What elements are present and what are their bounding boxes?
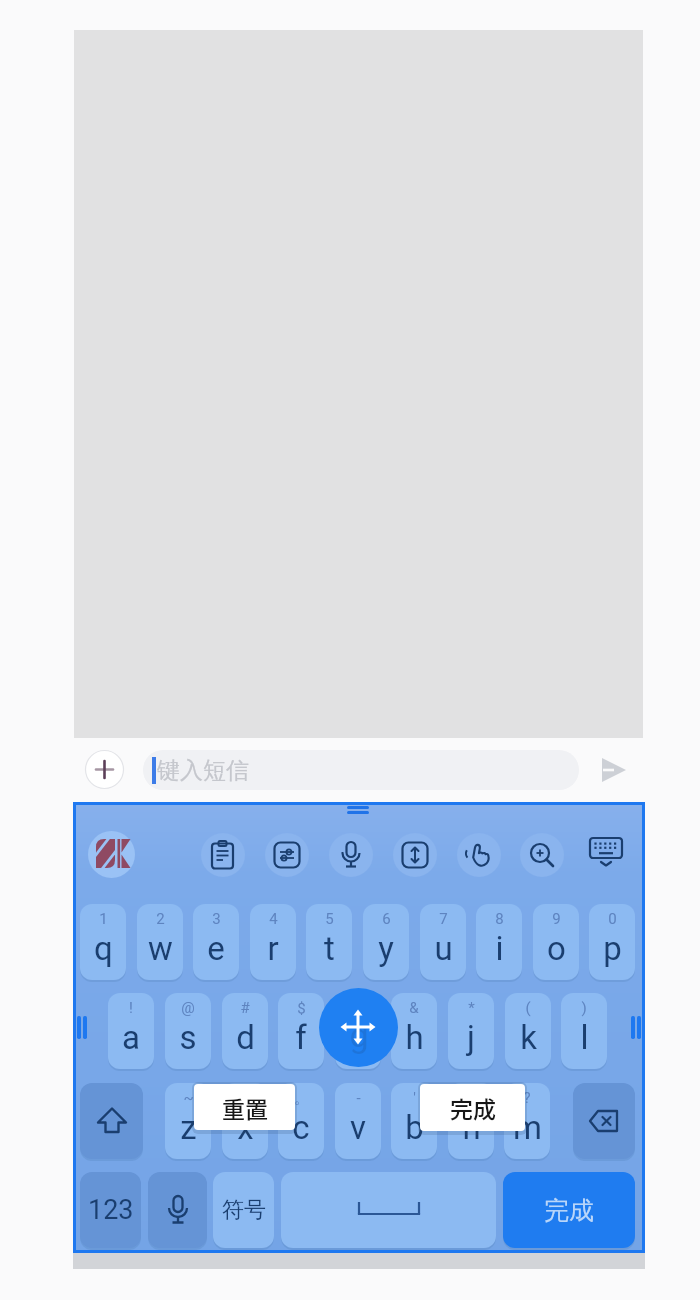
button[interactable] — [335, 993, 381, 1069]
button[interactable] — [476, 904, 522, 980]
button[interactable] — [520, 833, 564, 877]
staticText: n — [462, 1108, 481, 1147]
button[interactable] — [85, 750, 124, 789]
staticText: 123 — [88, 1194, 134, 1226]
staticText: t — [324, 929, 335, 968]
staticText: y — [378, 929, 394, 968]
button[interactable] — [137, 904, 183, 980]
button[interactable] — [265, 833, 309, 877]
button[interactable] — [420, 904, 466, 980]
button[interactable]: 重置 — [194, 1084, 295, 1130]
button[interactable] — [148, 1172, 207, 1248]
staticText: ~ — [183, 1089, 194, 1107]
staticText: ! — [129, 999, 133, 1017]
button[interactable] — [391, 1083, 437, 1159]
button[interactable] — [595, 752, 631, 788]
staticText: 完成 — [450, 1091, 496, 1124]
staticText: s — [179, 1018, 197, 1057]
staticText: · — [243, 1089, 247, 1107]
staticText: a — [122, 1018, 140, 1057]
staticText: $ — [297, 999, 306, 1017]
staticText: 1 — [99, 910, 108, 928]
staticText: f — [295, 1018, 307, 1057]
staticText: 符号 — [222, 1196, 266, 1224]
staticText: # — [240, 999, 250, 1017]
staticText: o — [547, 929, 566, 968]
button[interactable] — [165, 993, 211, 1069]
button[interactable] — [363, 904, 409, 980]
button[interactable] — [329, 833, 373, 877]
button[interactable] — [80, 1083, 143, 1159]
staticText: x — [237, 1108, 254, 1147]
staticText: m — [513, 1108, 542, 1147]
button[interactable] — [306, 904, 352, 980]
staticText: h — [405, 1018, 424, 1057]
button[interactable] — [448, 1083, 494, 1159]
staticText: - — [356, 1089, 361, 1107]
button[interactable] — [457, 833, 501, 877]
button[interactable] — [335, 1083, 381, 1159]
button[interactable] — [319, 988, 398, 1067]
button[interactable] — [573, 1083, 635, 1159]
staticText: ( — [525, 999, 531, 1017]
button[interactable] — [222, 1083, 268, 1159]
staticText: i — [495, 929, 504, 968]
button[interactable] — [165, 1083, 211, 1159]
staticText: % — [353, 999, 364, 1017]
staticText: 7 — [439, 910, 448, 928]
button[interactable] — [281, 1172, 496, 1248]
staticText: 3 — [212, 910, 221, 928]
staticText: b — [405, 1108, 424, 1147]
button[interactable] — [201, 833, 245, 877]
staticText: ' — [413, 1089, 416, 1107]
button[interactable] — [391, 993, 437, 1069]
button[interactable] — [222, 993, 268, 1069]
button[interactable] — [143, 750, 579, 790]
staticText: 键入短信 — [157, 756, 249, 785]
staticText: ) — [581, 999, 587, 1017]
button[interactable] — [88, 831, 135, 878]
staticText: 重置 — [222, 1091, 268, 1124]
staticText: ? — [523, 1089, 531, 1107]
button[interactable] — [80, 904, 126, 980]
staticText: 5 — [325, 910, 334, 928]
button[interactable]: 符号 — [213, 1172, 274, 1248]
button[interactable] — [504, 1083, 550, 1159]
button[interactable]: 完成 — [503, 1172, 635, 1248]
staticText: e — [207, 929, 225, 968]
button[interactable] — [108, 993, 154, 1069]
button[interactable] — [589, 904, 635, 980]
button[interactable] — [561, 993, 607, 1069]
staticText: * — [468, 999, 475, 1017]
staticText: 8 — [495, 910, 504, 928]
staticText: 0 — [608, 910, 617, 928]
button[interactable]: 完成 — [420, 1084, 525, 1131]
button[interactable] — [505, 993, 551, 1069]
button[interactable]: 123 — [80, 1172, 141, 1248]
staticText: v — [350, 1108, 366, 1147]
button[interactable] — [448, 993, 494, 1069]
staticText: l — [580, 1018, 589, 1057]
staticText: p — [603, 929, 622, 968]
button[interactable] — [533, 904, 579, 980]
staticText: 4 — [269, 910, 278, 928]
button[interactable] — [193, 904, 239, 980]
staticText: g — [349, 1015, 369, 1055]
staticText: r — [267, 929, 279, 968]
staticText: 。 — [294, 1089, 309, 1108]
staticText: 完成 — [544, 1195, 594, 1226]
button[interactable] — [393, 833, 437, 877]
staticText: u — [434, 929, 453, 968]
staticText: 9 — [552, 910, 561, 928]
staticText: z — [180, 1108, 197, 1147]
staticText: ! — [469, 1089, 473, 1107]
staticText: c — [292, 1108, 310, 1147]
button[interactable] — [250, 904, 296, 980]
staticText: j — [467, 1018, 475, 1057]
staticText: & — [409, 999, 419, 1017]
button[interactable] — [278, 993, 324, 1069]
staticText: 2 — [156, 910, 165, 928]
button[interactable] — [584, 833, 628, 877]
button[interactable] — [278, 1083, 324, 1159]
staticText: g — [349, 1018, 368, 1057]
